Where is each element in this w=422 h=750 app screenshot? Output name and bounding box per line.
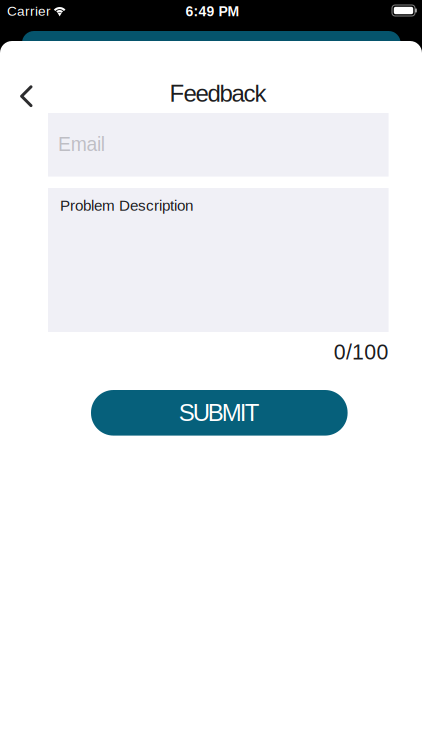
button[interactable]: SUBMIT <box>91 390 348 436</box>
button[interactable]: Back <box>0 73 49 120</box>
staticText: 0/100 <box>334 340 388 364</box>
button[interactable]: Problem Description <box>48 188 389 332</box>
staticText: Problem Description <box>60 197 193 214</box>
button[interactable]: Email <box>48 113 389 177</box>
staticText: 6:49 PM <box>185 3 239 19</box>
staticText: Email <box>58 133 105 155</box>
staticText: Feedback <box>169 80 266 107</box>
staticText: SUBMIT <box>179 399 260 426</box>
staticText: Carrier <box>7 3 51 19</box>
